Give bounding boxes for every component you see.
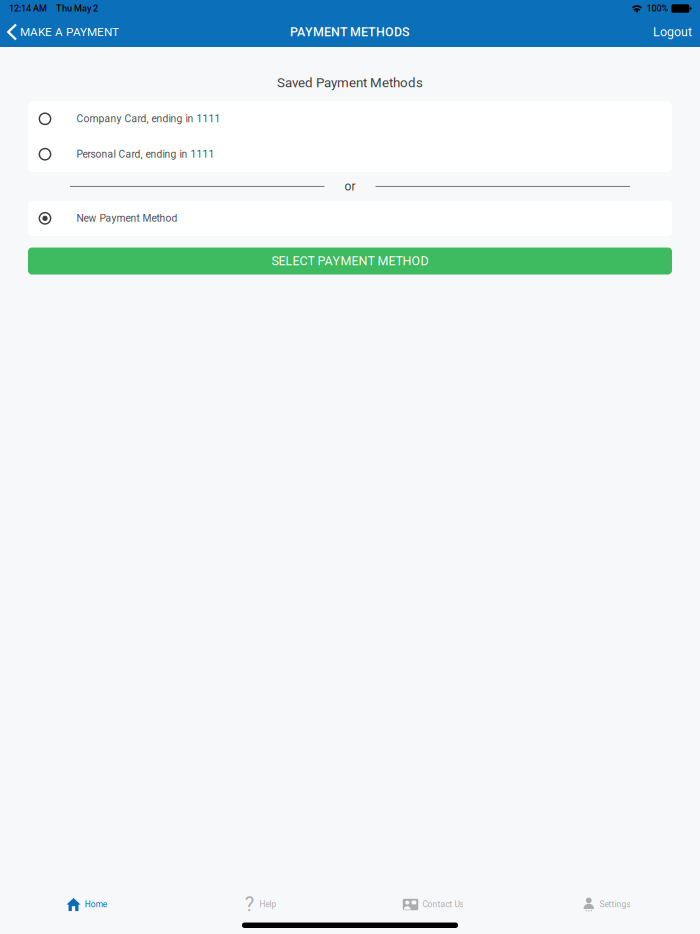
staticText: Thu May 2	[56, 3, 98, 14]
staticText: New Payment Method	[76, 212, 177, 224]
staticText: Home	[85, 900, 107, 909]
staticText: Help	[259, 900, 276, 909]
button[interactable]: Home	[0, 892, 173, 916]
staticText: 12:14 AM	[9, 3, 47, 14]
button[interactable]: Personal Card, ending in 1111	[28, 136, 672, 172]
staticText: Company Card, ending in 1111	[76, 113, 220, 125]
staticText: Saved Payment Methods	[277, 75, 423, 91]
staticText: SELECT PAYMENT METHOD	[271, 254, 428, 268]
staticText: ?	[245, 893, 254, 916]
staticText: PAYMENT METHODS	[290, 25, 410, 39]
button[interactable]: Contact Us	[346, 892, 520, 916]
staticText: MAKE A PAYMENT	[20, 25, 119, 39]
staticText: Personal Card, ending in 1111	[76, 148, 214, 160]
staticText: 100%	[646, 3, 668, 14]
button[interactable]: New Payment Method	[28, 201, 672, 236]
button[interactable]: MAKE A PAYMENT	[0, 17, 127, 47]
staticText: Settings	[599, 900, 630, 909]
button[interactable]: Settings	[520, 892, 693, 916]
button[interactable]: ?	[173, 892, 346, 916]
staticText: Logout	[653, 25, 692, 39]
staticText: or	[344, 179, 355, 193]
button[interactable]: SELECT PAYMENT METHOD	[28, 247, 672, 274]
staticText: Contact Us	[422, 900, 463, 909]
button[interactable]: Company Card, ending in 1111	[28, 101, 672, 136]
button[interactable]: Logout	[645, 17, 700, 47]
